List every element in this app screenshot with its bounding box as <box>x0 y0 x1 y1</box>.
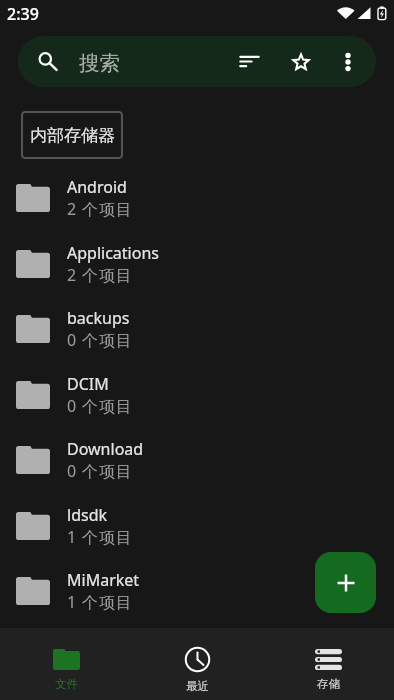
button[interactable]: 文件 <box>0 628 132 700</box>
button[interactable]: 存储 <box>263 628 394 700</box>
staticText: 最近 <box>186 679 209 693</box>
staticText: Android <box>67 176 127 198</box>
staticText: 1 个项目 <box>67 591 133 613</box>
button[interactable]: DCIM <box>0 362 394 427</box>
staticText: 内部存储器 <box>30 125 115 146</box>
staticText: Download <box>67 438 144 460</box>
button[interactable]: More options <box>326 40 370 84</box>
button[interactable]: ldsdk <box>0 493 394 558</box>
button[interactable]: Android <box>0 165 394 230</box>
button[interactable]: Search <box>18 36 74 87</box>
button[interactable]: backups <box>0 296 394 361</box>
staticText: Applications <box>67 242 159 264</box>
staticText: 搜索 <box>79 50 120 76</box>
staticText: 2 个项目 <box>67 198 133 220</box>
button[interactable]: Applications <box>0 231 394 296</box>
staticText: 2:39 <box>7 3 39 25</box>
button[interactable]: Favorites <box>279 40 323 84</box>
staticText: backups <box>67 307 130 329</box>
staticText: 0 个项目 <box>67 329 133 351</box>
button[interactable]: MiMarket <box>0 558 394 623</box>
staticText: 文件 <box>55 677 78 691</box>
staticText: ldsdk <box>67 504 108 526</box>
button[interactable]: Download <box>0 427 394 492</box>
staticText: DCIM <box>67 373 109 395</box>
staticText: 存储 <box>317 677 340 691</box>
staticText: 2 个项目 <box>67 264 133 286</box>
staticText: 0 个项目 <box>67 395 133 417</box>
button[interactable]: Sort <box>227 40 271 84</box>
button[interactable]: 内部存储器 <box>21 111 123 159</box>
staticText: MiMarket <box>67 569 140 591</box>
staticText: 0 个项目 <box>67 460 133 482</box>
button[interactable]: 最近 <box>132 628 263 700</box>
button[interactable]: New <box>315 552 376 613</box>
staticText: 1 个项目 <box>67 526 133 548</box>
